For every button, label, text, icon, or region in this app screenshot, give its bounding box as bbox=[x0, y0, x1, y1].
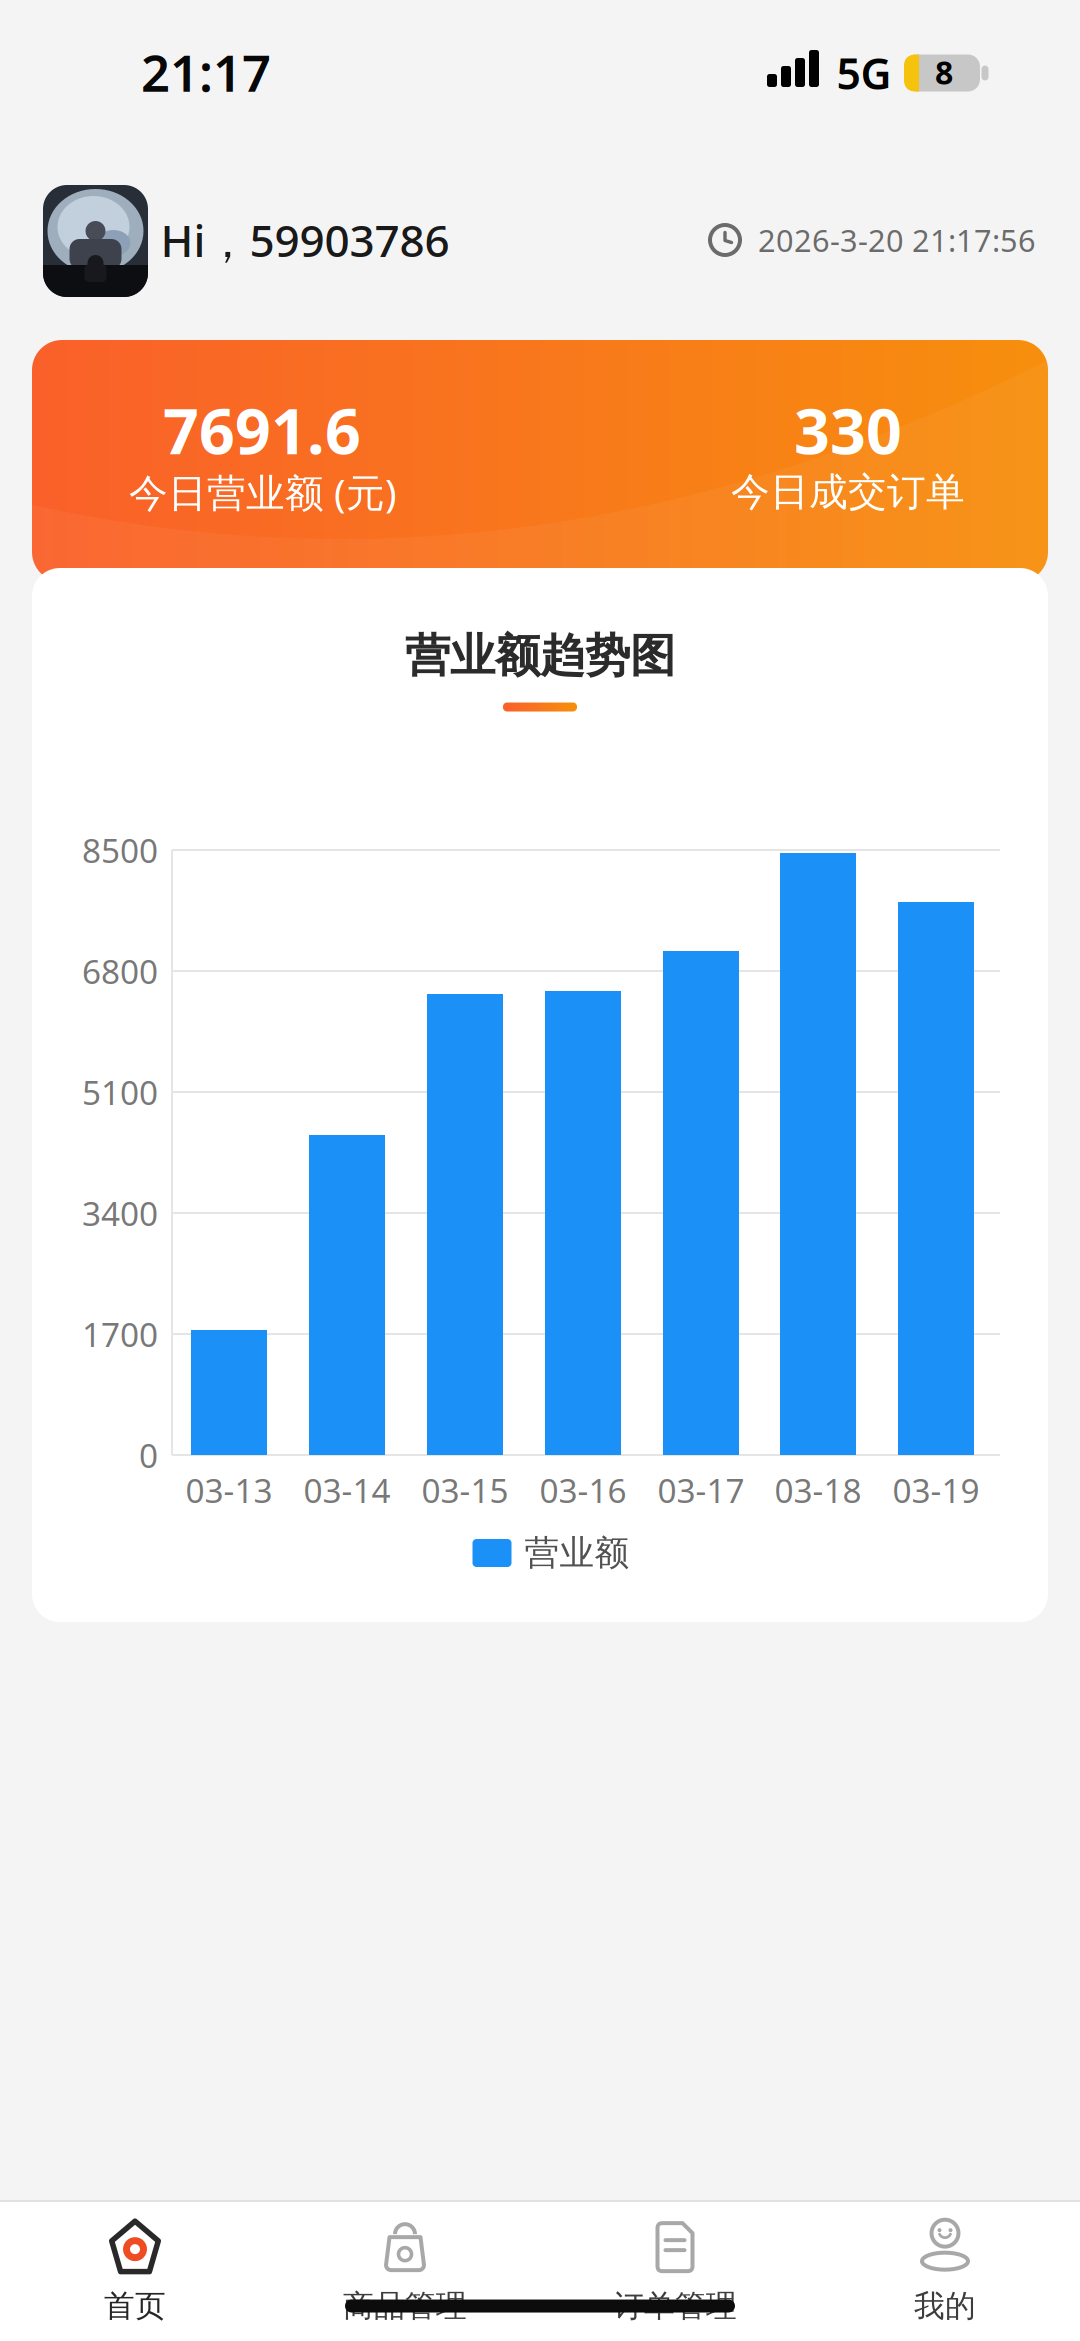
staticText: 7691.6 bbox=[163, 388, 361, 472]
staticText: 03-14 bbox=[303, 1468, 390, 1512]
staticText: 我的 bbox=[914, 2287, 976, 2325]
staticText: 6800 bbox=[82, 949, 158, 993]
staticText: 订单管理 bbox=[613, 2287, 737, 2325]
staticText: 03-16 bbox=[539, 1468, 626, 1512]
staticText: 21:17 bbox=[141, 38, 271, 106]
staticText: 营业额趋势图 bbox=[405, 628, 675, 684]
staticText: 8500 bbox=[82, 828, 158, 872]
staticText: 330 bbox=[794, 388, 902, 472]
staticText: 首页 bbox=[104, 2287, 166, 2325]
staticText: 今日成交订单 bbox=[731, 468, 965, 516]
button[interactable]: Profile bbox=[43, 185, 148, 297]
button[interactable]: 我的 bbox=[830, 2204, 1060, 2340]
staticText: 1700 bbox=[82, 1312, 158, 1356]
button[interactable]: 首页 bbox=[20, 2204, 250, 2340]
staticText: 2026-3-20 21:17:56 bbox=[758, 220, 1036, 260]
staticText: 5G bbox=[836, 45, 891, 101]
staticText: 5100 bbox=[82, 1070, 158, 1114]
staticText: 今日营业额 (元) bbox=[129, 466, 397, 518]
staticText: Hi，59903786 bbox=[160, 211, 449, 269]
staticText: 03-15 bbox=[421, 1468, 508, 1512]
staticText: 8 bbox=[935, 51, 953, 93]
staticText: 3400 bbox=[82, 1191, 158, 1235]
staticText: 商品管理 bbox=[343, 2287, 467, 2325]
staticText: 营业额 bbox=[524, 1532, 629, 1574]
button[interactable]: 商品管理 bbox=[290, 2204, 520, 2340]
staticText: 03-19 bbox=[892, 1468, 979, 1512]
staticText: 03-17 bbox=[657, 1468, 744, 1512]
button[interactable]: 订单管理 bbox=[560, 2204, 790, 2340]
staticText: 03-18 bbox=[774, 1468, 861, 1512]
staticText: 03-13 bbox=[185, 1468, 272, 1512]
staticText: 0 bbox=[139, 1433, 158, 1477]
